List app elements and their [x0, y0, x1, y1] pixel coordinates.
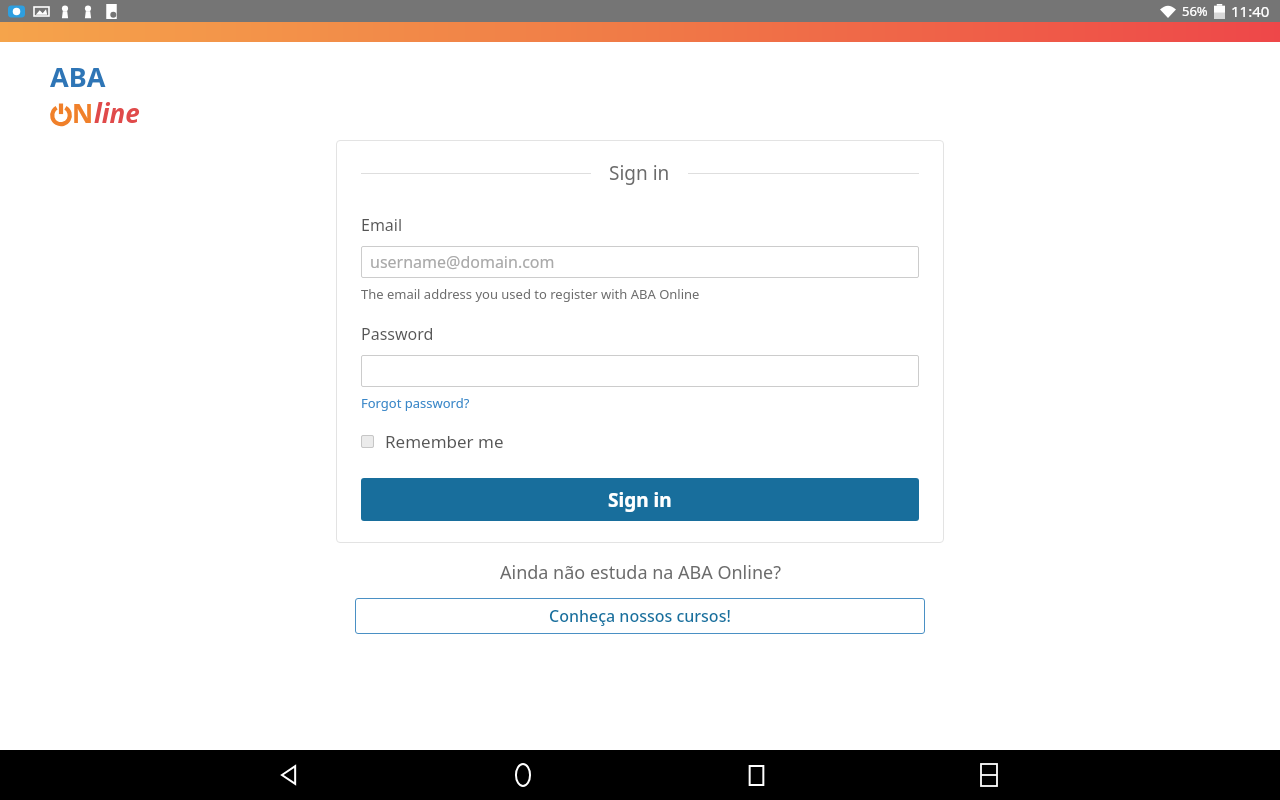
staticText: line	[94, 95, 140, 130]
staticText: username@domain.com	[370, 251, 555, 273]
button[interactable]: Recent apps	[733, 752, 779, 798]
button[interactable]: Sign in	[361, 478, 919, 521]
staticText: 56%	[1182, 2, 1208, 20]
staticText: Remember me	[385, 430, 504, 453]
staticText: Password	[361, 323, 434, 345]
button[interactable]: Home	[500, 752, 546, 798]
staticText: The email address you used to register w…	[361, 285, 700, 303]
button[interactable]: Forgot password?	[361, 394, 470, 412]
staticText: Ainda não estuda na ABA Online?	[500, 560, 781, 585]
button[interactable]: Split screen	[966, 752, 1012, 798]
staticText: Sign in	[609, 160, 670, 186]
staticText: 11:40	[1231, 1, 1270, 21]
button[interactable]: Back	[266, 752, 312, 798]
staticText: Email	[361, 214, 403, 236]
staticText: Sign in	[608, 487, 672, 513]
button[interactable]: username@domain.com	[361, 246, 919, 278]
staticText: Conheça nossos cursos!	[549, 605, 731, 627]
staticText: N	[72, 95, 94, 130]
staticText: ABA	[50, 58, 106, 95]
button[interactable]: Remember me	[361, 430, 504, 453]
button[interactable]	[361, 355, 919, 387]
button[interactable]: Conheça nossos cursos!	[355, 598, 925, 634]
